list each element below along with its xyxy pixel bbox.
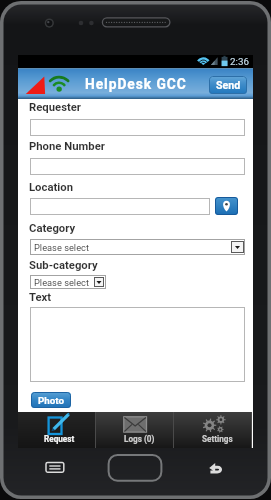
staticText: Sub-category — [29, 259, 98, 272]
staticText: Settings — [202, 434, 233, 444]
button[interactable]: Photo — [31, 392, 71, 408]
staticText: 2:36 — [230, 56, 249, 67]
staticText: Please select — [34, 242, 89, 253]
button[interactable] — [30, 158, 245, 175]
staticText: Send — [216, 79, 241, 91]
button[interactable] — [174, 412, 252, 448]
staticText: Photo — [38, 395, 65, 406]
button[interactable]: Send — [209, 76, 247, 94]
staticText: HelpDesk GCC — [85, 76, 187, 92]
button[interactable] — [30, 198, 210, 215]
button[interactable] — [30, 119, 245, 136]
button[interactable]: Please select — [30, 239, 245, 255]
staticText: Logs (0) — [124, 434, 155, 444]
staticText: Requester — [29, 101, 81, 114]
button[interactable] — [30, 307, 245, 382]
staticText: Request — [44, 434, 75, 444]
staticText: Category — [29, 222, 76, 235]
button[interactable] — [18, 412, 96, 448]
staticText: Phone Number — [29, 140, 105, 153]
button[interactable]: Pick location — [215, 197, 238, 215]
staticText: Please select — [34, 277, 89, 288]
staticText: Text — [29, 291, 52, 304]
staticText: Location — [29, 181, 73, 194]
button[interactable]: Please select — [30, 275, 106, 289]
button[interactable] — [96, 412, 174, 448]
